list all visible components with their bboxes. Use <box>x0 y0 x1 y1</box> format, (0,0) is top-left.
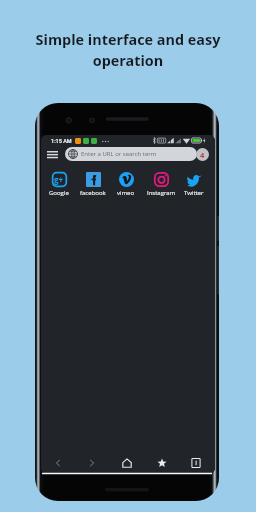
staticText: Instagram <box>147 189 176 197</box>
button[interactable]: Menu <box>44 147 61 161</box>
button[interactable]: vimeo <box>110 168 142 197</box>
staticText: Google <box>49 189 69 197</box>
button[interactable]: facebook <box>77 168 109 197</box>
button[interactable]: Forward <box>78 452 106 474</box>
staticText: vimeo <box>117 189 135 197</box>
staticText: Twitter <box>184 189 204 197</box>
button[interactable]: g+ <box>43 168 75 197</box>
staticText: g+ <box>54 174 64 185</box>
staticText: Simple interface and easy operation <box>22 30 234 70</box>
button[interactable]: Open tabs <box>196 148 209 161</box>
staticText: Enter a URL or search term <box>81 150 157 158</box>
button[interactable]: Bookmarks <box>148 452 176 474</box>
button[interactable]: Twitter <box>178 168 210 197</box>
button[interactable]: Tabs <box>182 452 210 474</box>
staticText: facebook <box>80 189 106 197</box>
button[interactable]: Home <box>113 452 141 474</box>
button[interactable]: Back <box>44 452 72 474</box>
staticText: 1:15 AM <box>51 138 72 144</box>
button[interactable]: Instagram <box>145 168 177 197</box>
button[interactable]: Enter a URL or search term <box>65 147 197 161</box>
staticText: 4 <box>200 150 205 160</box>
